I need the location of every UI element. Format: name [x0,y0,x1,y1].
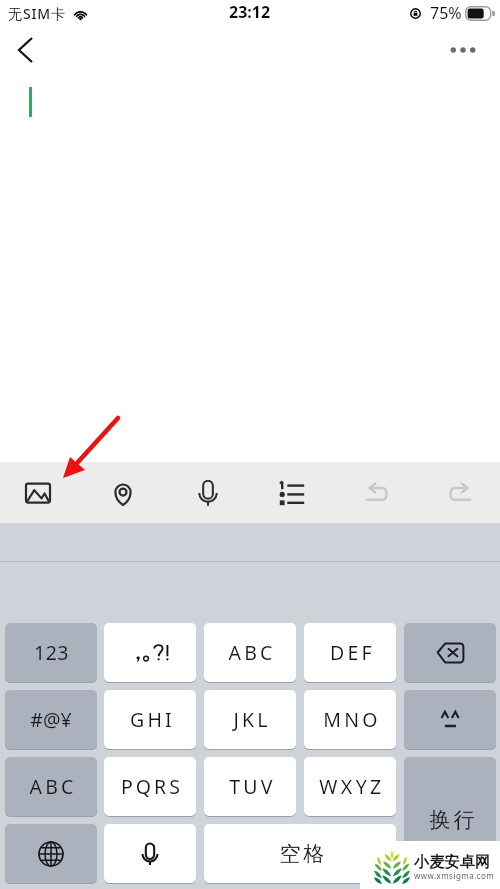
button[interactable]: TUV [204,757,296,816]
staticText: 换行 [428,807,476,833]
button[interactable]: Back [0,26,50,74]
button[interactable]: Switch input language [5,824,97,883]
button[interactable]: List [266,467,318,519]
button[interactable]: ABC [204,623,296,682]
button[interactable]: PQRS [104,757,196,816]
staticText: MNO [323,706,381,733]
button[interactable]: Location [97,467,149,519]
staticText: 123 [34,639,69,666]
button[interactable]: Undo [351,467,403,519]
staticText: 75% [430,2,462,24]
staticText: WXYZ [319,773,385,800]
button[interactable]: 换行 [404,757,496,883]
button[interactable]: Insert image [12,467,64,519]
staticText: ABC [29,773,77,800]
button[interactable]: Voice input [182,467,234,519]
button[interactable]: DEF [304,623,396,682]
staticText: JKL [233,706,271,733]
staticText: 空格 [278,841,326,867]
button[interactable]: Emoticons [404,690,496,749]
button[interactable]: 空格 [204,824,396,883]
button[interactable]: WXYZ [304,757,396,816]
staticText: 23:12 [229,1,271,23]
staticText: 无SIM卡 [8,4,67,23]
staticText: DEF [330,639,375,666]
button[interactable]: MNO [304,690,396,749]
staticText: PQRS [121,773,183,800]
staticText: 小麦安卓网 [414,853,490,872]
staticText: #@¥ [30,706,72,733]
button[interactable]: Voice input [104,623,196,682]
button[interactable]: Voice input [104,824,196,883]
button[interactable]: JKL [204,690,296,749]
button[interactable]: 123 [5,623,97,682]
staticText: TUV [229,773,276,800]
button[interactable]: More options [436,26,490,74]
staticText: ABC [228,639,276,666]
button[interactable]: Redo [434,467,486,519]
button[interactable]: Delete [404,623,496,682]
button[interactable]: GHI [104,690,196,749]
staticText: GHI [130,706,175,733]
button[interactable]: #@¥ [5,690,97,749]
staticText: www.xmsigma.com [414,870,495,881]
button[interactable]: ABC [5,757,97,816]
